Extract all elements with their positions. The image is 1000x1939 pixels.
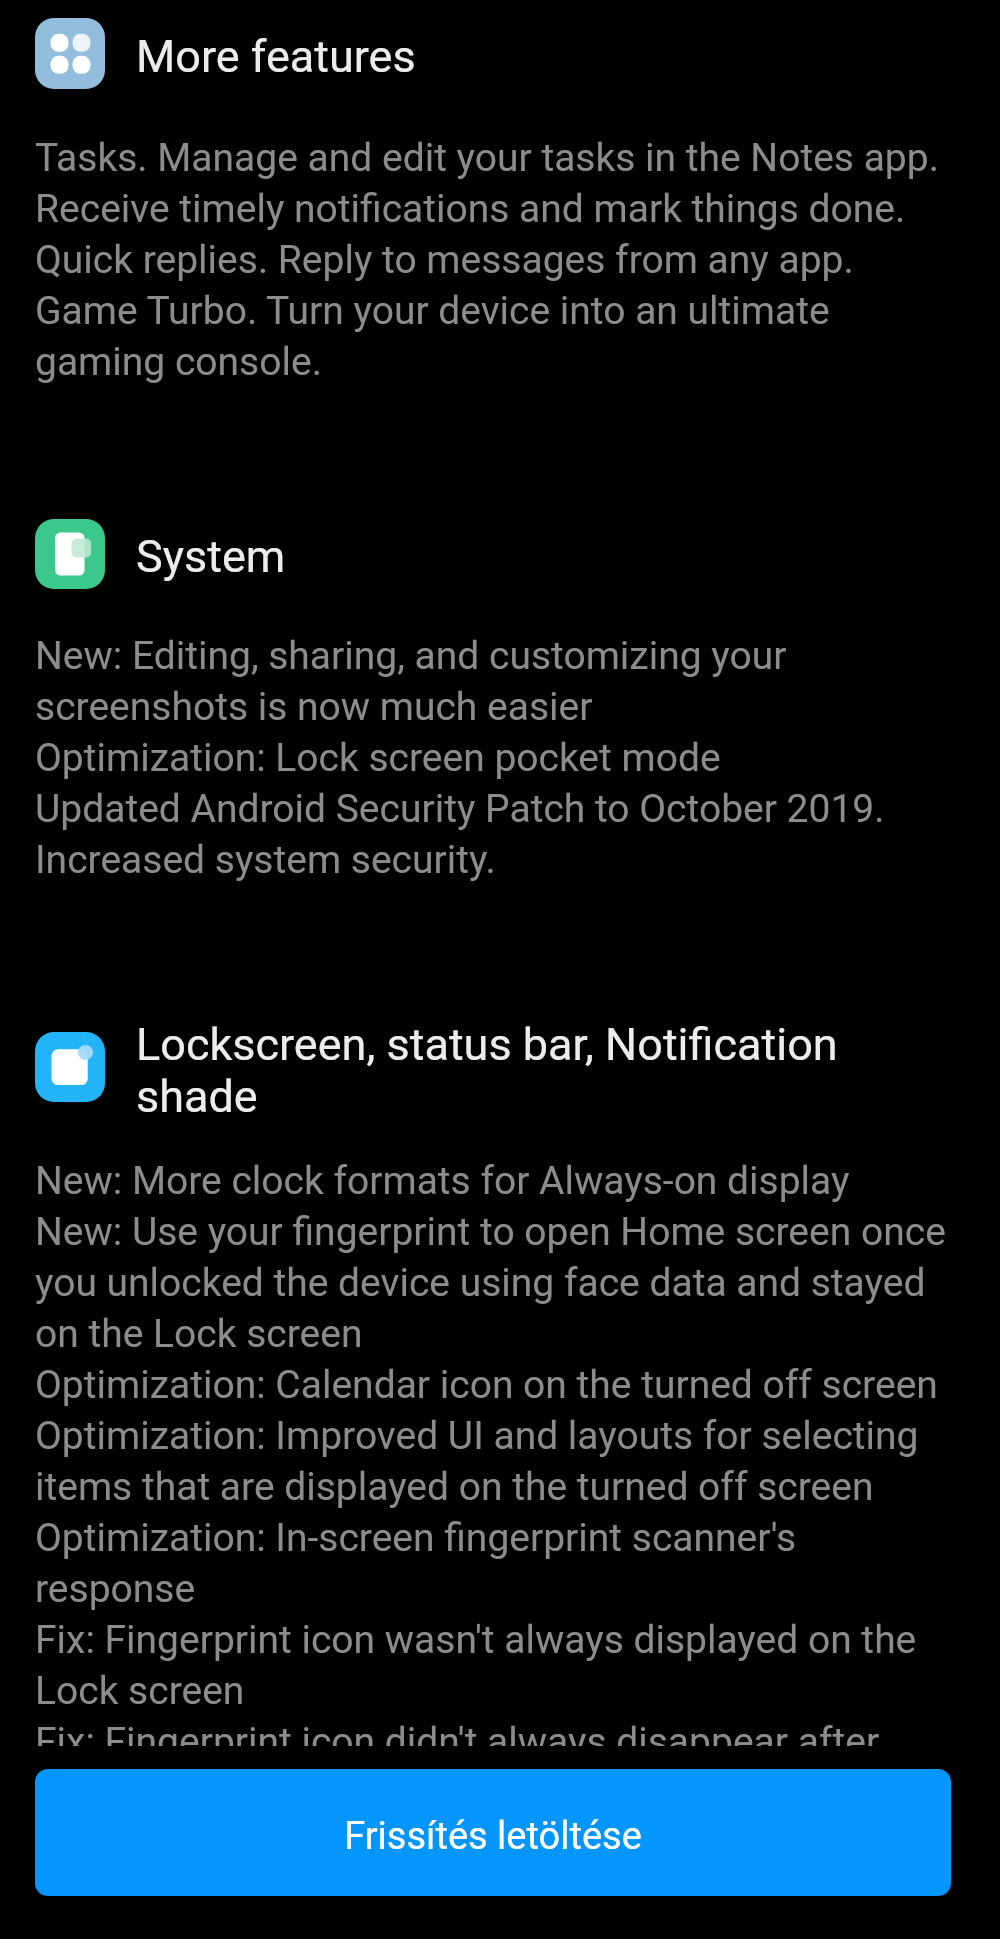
staticText: New: Editing, sharing, and customizing y… [35,633,885,883]
button[interactable]: More features [35,18,105,89]
button[interactable]: System [136,530,286,583]
button[interactable]: Lockscreen, status bar, Notification sha… [136,1018,838,1123]
button[interactable]: More features [136,30,416,83]
staticText: New: More clock formats for Always-on di… [35,1158,946,1746]
staticText: More features [136,30,416,83]
staticText: System [136,530,286,583]
staticText: Frissítés letöltése [344,1814,642,1859]
button[interactable]: System [35,519,105,589]
button[interactable]: Lockscreen, status bar, Notification sha… [35,1032,105,1102]
staticText: Lockscreen, status bar, Notification sha… [136,1018,838,1123]
staticText: Tasks. Manage and edit your tasks in the… [35,135,939,385]
button[interactable]: Frissítés letöltése [35,1769,951,1896]
